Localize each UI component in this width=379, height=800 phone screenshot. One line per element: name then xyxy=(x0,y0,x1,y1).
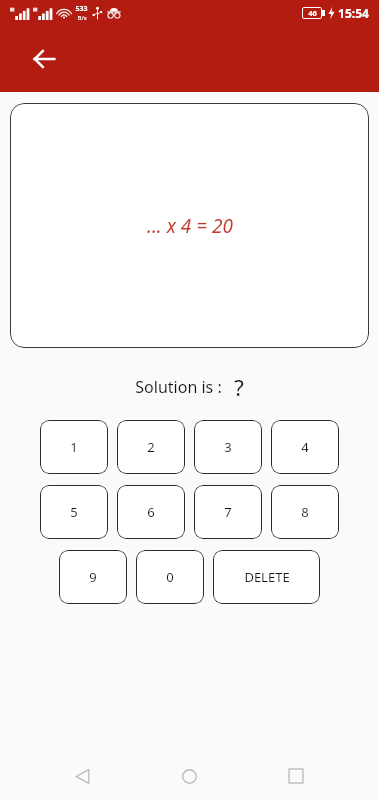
staticText: 4 xyxy=(301,438,309,456)
staticText: 6 xyxy=(147,503,155,521)
button[interactable]: 8 xyxy=(271,485,339,539)
button[interactable]: 1 xyxy=(40,420,108,474)
staticText: 46 xyxy=(308,8,317,18)
button[interactable]: Back xyxy=(22,37,66,81)
button[interactable]: Recent apps xyxy=(272,752,320,800)
staticText: 3 xyxy=(224,438,232,456)
button[interactable]: 6 xyxy=(117,485,185,539)
staticText: 5 xyxy=(70,503,78,521)
button[interactable]: 5 xyxy=(40,485,108,539)
staticText: 1 xyxy=(70,438,78,456)
button[interactable]: 7 xyxy=(194,485,262,539)
staticText: ? xyxy=(234,372,244,402)
staticText: DELETE xyxy=(244,568,290,586)
staticText: 533 xyxy=(75,4,88,14)
button[interactable]: 9 xyxy=(59,550,127,604)
staticText: 0 xyxy=(166,568,174,586)
button[interactable]: Home xyxy=(165,752,213,800)
staticText: 7 xyxy=(224,503,232,521)
staticText: 15:54 xyxy=(338,5,369,21)
button[interactable]: Back xyxy=(58,752,106,800)
button[interactable]: 0 xyxy=(136,550,204,604)
button[interactable]: 4 xyxy=(271,420,339,474)
staticText: Solution is : xyxy=(135,376,222,398)
button[interactable]: 3 xyxy=(194,420,262,474)
staticText: ... x 4 = 20 xyxy=(147,213,233,239)
staticText: 9 xyxy=(89,568,97,586)
button[interactable]: DELETE xyxy=(213,550,320,604)
staticText: 8 xyxy=(301,503,309,521)
button[interactable]: 2 xyxy=(117,420,185,474)
staticText: 2 xyxy=(147,438,155,456)
staticText: B/s xyxy=(77,14,87,22)
